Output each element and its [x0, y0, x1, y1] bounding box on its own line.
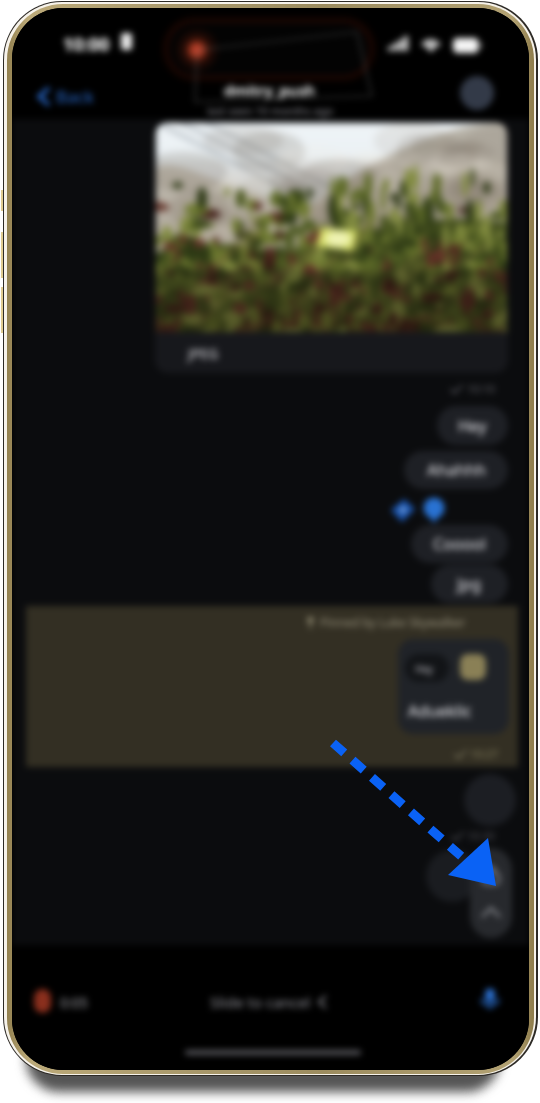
button[interactable]: Cooool [411, 525, 508, 563]
staticText: JPEG [188, 344, 219, 363]
staticText: Hey [415, 662, 433, 676]
button[interactable]: Slide to cancel [210, 992, 327, 1012]
button[interactable]: JPEG [155, 122, 508, 373]
staticText: 10:00 [63, 32, 110, 57]
staticText: Hey [458, 415, 487, 437]
button[interactable]: Hey [437, 406, 508, 445]
staticText: Pinned by Luke Skywalker [320, 614, 466, 630]
staticText: Slide to cancel [210, 992, 311, 1012]
staticText: last seen 10 months ago [207, 103, 334, 118]
staticText: Adueklic [408, 700, 472, 722]
button[interactable]: Ahahhh [404, 451, 508, 489]
staticText: 0:05 [60, 993, 88, 1012]
button[interactable]: Profile picture [460, 76, 494, 110]
staticText: Back [56, 85, 94, 108]
button[interactable]: Hey [398, 639, 509, 734]
staticText: Cooool [433, 533, 486, 555]
button[interactable]: Lock voice recording [470, 848, 512, 938]
button[interactable]: Jpg [431, 565, 508, 603]
staticText: 10:27 [470, 746, 499, 761]
staticText: Ahahhh [427, 459, 486, 481]
staticText: dmitry_push [224, 80, 316, 100]
staticText: 10:10 [467, 381, 496, 396]
staticText: 10:30 [467, 828, 496, 843]
button[interactable]: Back [34, 81, 98, 112]
staticText: Jpg [457, 573, 482, 595]
button[interactable]: Microphone [474, 982, 506, 1014]
